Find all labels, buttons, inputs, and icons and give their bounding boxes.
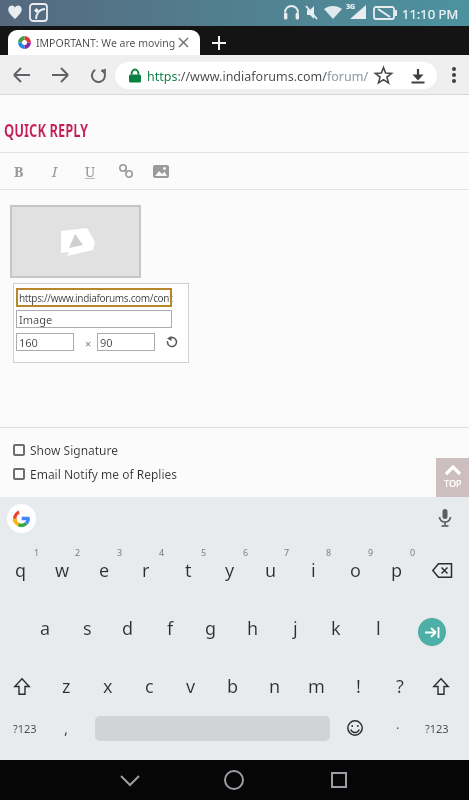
staticText: n (269, 674, 281, 699)
staticText: 2 (75, 546, 81, 558)
button[interactable]: , (47, 709, 85, 747)
button[interactable]: x (89, 667, 127, 705)
button[interactable]: c (130, 667, 168, 705)
staticText: f (167, 616, 174, 641)
button[interactable]: r (127, 551, 165, 589)
button[interactable]: n (256, 667, 294, 705)
button[interactable]: Email Notify me of Replies (8, 464, 208, 485)
button[interactable]: i (294, 551, 332, 589)
button[interactable] (368, 62, 398, 89)
button[interactable] (162, 332, 182, 352)
staticText: Show Signature (30, 442, 119, 458)
staticText: B (14, 162, 24, 181)
button[interactable]: g (192, 609, 230, 647)
button[interactable]: 90 (97, 333, 155, 351)
button[interactable] (4, 668, 40, 704)
staticText: × (85, 336, 92, 351)
button[interactable] (112, 762, 148, 798)
staticText: 7 (284, 546, 290, 558)
button[interactable] (7, 504, 36, 533)
button[interactable]: j (276, 609, 314, 647)
button[interactable]: v (172, 667, 210, 705)
button[interactable] (8, 61, 36, 89)
button[interactable] (423, 668, 459, 704)
staticText: l (376, 616, 381, 641)
staticText: 90 (100, 335, 113, 350)
button[interactable] (216, 762, 252, 798)
staticText: I (52, 162, 58, 181)
staticText: q (15, 558, 27, 583)
button[interactable]: 160 (16, 333, 74, 351)
button[interactable]: TOP (436, 458, 469, 497)
staticText: U (85, 162, 96, 181)
button[interactable] (84, 61, 112, 89)
button[interactable]: ?123 (418, 709, 456, 747)
staticText: u (265, 558, 277, 583)
staticText: z (62, 674, 71, 699)
button[interactable] (338, 711, 372, 745)
staticText: k (331, 616, 341, 641)
staticText: j (293, 616, 298, 641)
button[interactable]: w (43, 551, 81, 589)
button[interactable]: h (234, 609, 272, 647)
button[interactable] (418, 618, 446, 646)
button[interactable] (424, 552, 460, 588)
button[interactable] (205, 30, 233, 55)
staticText: https://www.indiaforums.com/forum/t… (147, 68, 377, 85)
button[interactable] (150, 160, 172, 182)
button[interactable] (321, 762, 357, 798)
button[interactable] (46, 61, 74, 89)
button[interactable]: ! (339, 667, 377, 705)
button[interactable]: f (151, 609, 189, 647)
button[interactable]: Image (16, 310, 172, 328)
button[interactable]: IMPORTANT: We are moving (8, 30, 200, 55)
button[interactable]: q (2, 551, 40, 589)
button[interactable]: s (68, 609, 106, 647)
button[interactable] (432, 505, 458, 531)
button[interactable]: U (79, 160, 101, 182)
button[interactable]: e (85, 551, 123, 589)
button[interactable]: t (169, 551, 207, 589)
button[interactable]: k (317, 609, 355, 647)
staticText: a (40, 616, 51, 641)
button[interactable]: m (297, 667, 335, 705)
button[interactable]: Show Signature (8, 440, 188, 461)
staticText: 9 (368, 546, 374, 558)
button[interactable]: p (378, 551, 416, 589)
staticText: w (55, 558, 70, 583)
button[interactable]: B (8, 160, 30, 182)
staticText: e (99, 558, 110, 583)
button[interactable]: z (47, 667, 85, 705)
button[interactable]: b (214, 667, 252, 705)
button[interactable]: u (252, 551, 290, 589)
staticText: TOP (444, 477, 462, 489)
button[interactable] (115, 160, 137, 182)
button[interactable]: a (26, 609, 64, 647)
staticText: 160 (19, 335, 38, 350)
button[interactable] (403, 62, 433, 89)
button[interactable]: o (336, 551, 374, 589)
staticText: m (308, 674, 325, 699)
staticText: d (122, 616, 134, 641)
button[interactable]: I (44, 160, 66, 182)
button[interactable]: y (211, 551, 249, 589)
staticText: y (225, 558, 235, 583)
button[interactable] (441, 61, 467, 89)
button[interactable]: https://www.indiaforums.com/forum/t… (115, 62, 437, 89)
staticText: 1 (34, 546, 40, 558)
staticText: Image (19, 312, 53, 327)
button[interactable]: l (359, 609, 397, 647)
staticText: s (83, 616, 92, 641)
staticText: ?123 (13, 721, 37, 736)
button[interactable]: ?123 (6, 709, 44, 747)
button[interactable]: https://www.indiaforums.com/cont (16, 288, 172, 307)
staticText: ! (356, 674, 361, 699)
button[interactable]: · (379, 709, 417, 747)
button[interactable]: d (109, 609, 147, 647)
button[interactable]: ? (381, 667, 419, 705)
staticText: https://www.indiaforums.com/cont (19, 291, 173, 305)
staticText: 6 (243, 546, 249, 558)
staticText: o (350, 558, 361, 583)
staticText: g (205, 616, 217, 641)
